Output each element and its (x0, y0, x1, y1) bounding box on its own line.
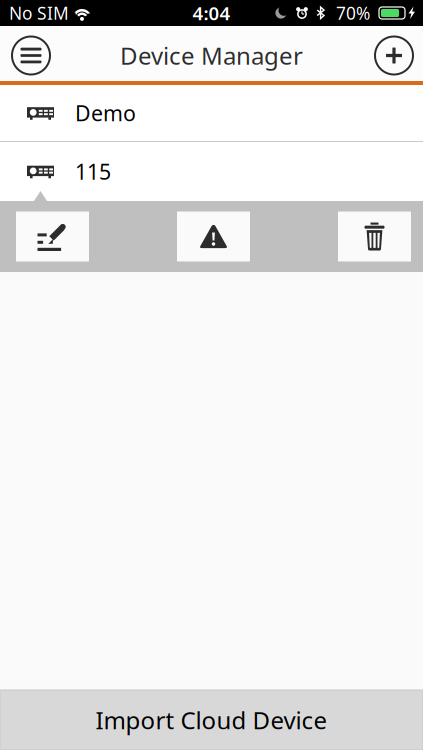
staticText: 115 (75, 157, 111, 186)
button[interactable]: Import Cloud Device (0, 690, 423, 750)
button[interactable]: Delete (338, 211, 411, 261)
staticText: 70% (336, 1, 370, 24)
staticText: Device Manager (120, 40, 303, 71)
staticText: Demo (75, 99, 136, 127)
staticText: No SIM (9, 1, 69, 24)
button[interactable]: Menu (9, 33, 53, 77)
button[interactable]: 115 (0, 142, 423, 201)
staticText: 4:04 (192, 1, 230, 25)
button[interactable]: Demo (0, 85, 423, 142)
button[interactable]: Edit (16, 211, 89, 261)
staticText: Import Cloud Device (95, 704, 327, 736)
button[interactable]: Alarm (177, 211, 250, 261)
button[interactable]: Add device (372, 33, 416, 77)
